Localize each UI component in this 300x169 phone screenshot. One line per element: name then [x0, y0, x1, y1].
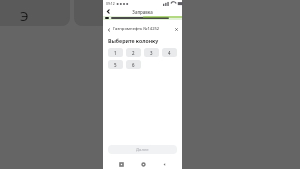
staticText: 6	[132, 62, 135, 68]
staticText: 1	[114, 50, 117, 56]
staticText: Выберите колонку	[108, 37, 159, 44]
staticText: Далее	[136, 147, 149, 153]
staticText: 3	[150, 50, 153, 56]
staticText: Э	[20, 7, 29, 25]
button[interactable]: 4	[162, 48, 177, 57]
button[interactable]: Назад	[106, 27, 111, 32]
staticText: 5	[114, 62, 117, 68]
staticText: Газпромнефть №14252	[113, 26, 174, 32]
button[interactable]: 1	[108, 48, 123, 57]
button[interactable]: Главная	[139, 160, 147, 168]
button[interactable]: Обзор	[117, 160, 125, 168]
button[interactable]: Назад	[160, 160, 168, 168]
button[interactable]: 6	[126, 60, 141, 69]
staticText: Заправка	[132, 9, 153, 15]
button[interactable]: Далее	[108, 145, 177, 154]
button[interactable]: 5	[108, 60, 123, 69]
staticText: 09:12	[106, 1, 115, 6]
button[interactable]: 3	[144, 48, 159, 57]
button[interactable]: Закрыть	[174, 27, 179, 32]
staticText: 4	[168, 50, 171, 56]
button[interactable]: Назад	[105, 8, 112, 15]
button[interactable]: 2	[126, 48, 141, 57]
staticText: 2	[132, 50, 135, 56]
